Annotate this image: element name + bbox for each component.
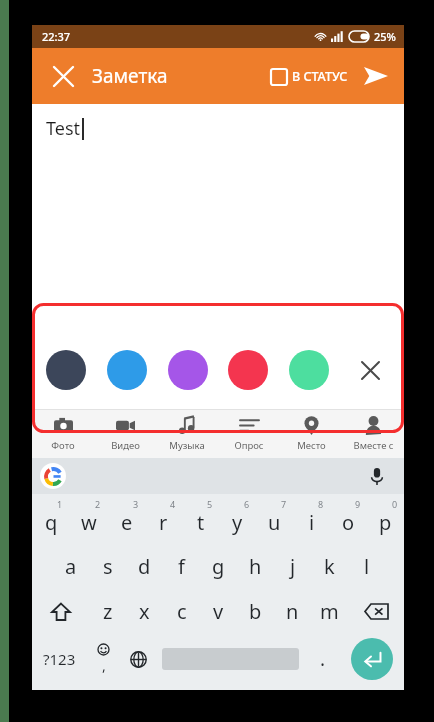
staticText: Опрос <box>234 439 264 452</box>
button[interactable]: y <box>219 494 256 544</box>
staticText: Видео <box>111 439 140 452</box>
staticText: 22:37 <box>42 29 71 44</box>
button[interactable]: Close palette <box>350 350 390 390</box>
staticText: k <box>324 553 335 580</box>
staticText: d <box>138 553 151 580</box>
button[interactable]: Вместе с <box>342 410 404 458</box>
staticText: n <box>286 598 299 625</box>
staticText: Вместе с <box>353 439 394 452</box>
staticText: o <box>342 509 355 536</box>
button[interactable]: c <box>163 589 200 634</box>
staticText: 7 <box>281 498 287 510</box>
button[interactable]: Close <box>46 59 80 93</box>
button[interactable]: k <box>311 544 348 589</box>
button[interactable]: Видео <box>94 410 156 458</box>
button[interactable]: ?123 <box>32 634 86 684</box>
staticText: 0 <box>392 498 398 510</box>
button[interactable]: Color 2 <box>168 350 208 390</box>
button[interactable]: s <box>89 544 126 589</box>
staticText: 25% <box>374 29 396 44</box>
button[interactable]: Место <box>280 410 342 458</box>
staticText: . <box>320 646 326 672</box>
staticText: 9 <box>355 498 361 510</box>
staticText: z <box>103 598 113 625</box>
staticText: 4 <box>170 498 176 510</box>
button[interactable]: Emoji <box>86 634 121 684</box>
staticText: h <box>249 553 262 580</box>
button[interactable]: Google <box>40 463 66 489</box>
staticText: , <box>102 656 106 675</box>
staticText: 8 <box>318 498 324 510</box>
staticText: y <box>232 509 243 536</box>
button[interactable]: g <box>200 544 237 589</box>
button[interactable]: Send <box>360 60 392 92</box>
button[interactable]: u <box>256 494 293 544</box>
button[interactable]: i <box>293 494 330 544</box>
button[interactable]: q <box>32 494 70 544</box>
staticText: f <box>178 553 185 580</box>
staticText: s <box>103 553 113 580</box>
staticText: j <box>290 553 296 580</box>
button[interactable]: Shift <box>32 589 89 634</box>
button[interactable]: h <box>237 544 274 589</box>
button[interactable]: Color 4 <box>289 350 329 390</box>
staticText: x <box>139 598 150 625</box>
staticText: c <box>177 598 187 625</box>
button[interactable]: x <box>126 589 163 634</box>
button[interactable]: z <box>89 589 126 634</box>
staticText: i <box>309 509 315 536</box>
staticText: 6 <box>244 498 250 510</box>
button[interactable]: p <box>367 494 404 544</box>
staticText: v <box>213 598 224 625</box>
staticText: b <box>249 598 262 625</box>
staticText: g <box>212 553 225 580</box>
button[interactable]: t <box>182 494 219 544</box>
button[interactable]: Color 0 <box>46 350 86 390</box>
button[interactable]: Музыка <box>156 410 218 458</box>
button[interactable]: Backspace <box>348 589 404 634</box>
staticText: Заметка <box>92 63 168 89</box>
staticText: t <box>197 509 205 536</box>
staticText: 5 <box>207 498 213 510</box>
staticText: l <box>364 553 370 580</box>
button[interactable]: Voice input <box>364 463 390 489</box>
staticText: u <box>268 509 281 536</box>
staticText: e <box>121 509 133 536</box>
button[interactable]: f <box>163 544 200 589</box>
staticText: m <box>320 598 339 625</box>
button[interactable]: a <box>52 544 89 589</box>
button[interactable]: w <box>70 494 108 544</box>
button[interactable]: В СТАТУС <box>269 64 350 89</box>
button[interactable]: j <box>274 544 311 589</box>
button[interactable] <box>156 634 305 684</box>
staticText: Test <box>46 116 81 141</box>
button[interactable]: m <box>311 589 348 634</box>
button[interactable]: e <box>108 494 145 544</box>
staticText: В СТАТУС <box>292 68 348 85</box>
staticText: 1 <box>57 498 63 510</box>
button[interactable]: Enter <box>340 634 404 684</box>
staticText: Место <box>297 439 326 452</box>
staticText: Музыка <box>169 439 205 452</box>
button[interactable]: o <box>330 494 367 544</box>
button[interactable]: Фото <box>32 410 94 458</box>
button[interactable]: r <box>145 494 182 544</box>
staticText: q <box>45 509 58 536</box>
staticText: Фото <box>51 439 75 452</box>
staticText: a <box>65 553 77 580</box>
staticText: 3 <box>133 498 139 510</box>
staticText: ?123 <box>43 649 76 669</box>
button[interactable]: Опрос <box>218 410 280 458</box>
button[interactable]: d <box>126 544 163 589</box>
button[interactable]: v <box>200 589 237 634</box>
button[interactable]: n <box>274 589 311 634</box>
button[interactable]: . <box>305 634 340 684</box>
button[interactable]: Color 3 <box>228 350 268 390</box>
staticText: p <box>379 509 392 536</box>
button[interactable]: b <box>237 589 274 634</box>
staticText: r <box>159 509 168 536</box>
staticText: 2 <box>95 498 101 510</box>
button[interactable]: l <box>348 544 385 589</box>
button[interactable]: Change language <box>121 634 156 684</box>
button[interactable]: Color 1 <box>107 350 147 390</box>
